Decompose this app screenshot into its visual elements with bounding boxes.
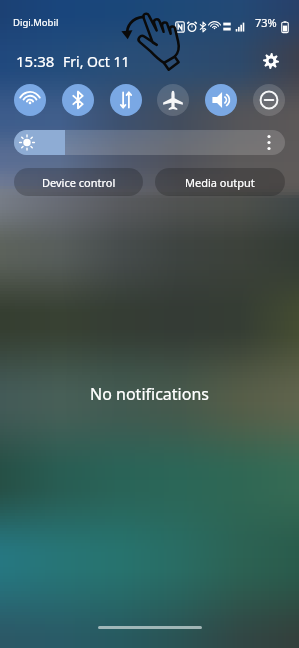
staticText: Digi.Mobil xyxy=(13,16,59,29)
staticText: 15:38 xyxy=(16,51,55,71)
button[interactable]: Media output xyxy=(155,168,285,196)
button[interactable]: Do not disturb xyxy=(253,84,285,116)
button[interactable]: Brightness xyxy=(14,130,285,155)
staticText: 73% xyxy=(255,15,277,30)
staticText: Fri, Oct 11 xyxy=(63,52,130,71)
staticText: No notifications xyxy=(90,383,209,405)
button[interactable]: Mobile data xyxy=(110,84,142,116)
button[interactable]: Device control xyxy=(14,168,143,196)
button[interactable]: Bluetooth xyxy=(62,84,94,116)
button[interactable]: Wi-Fi xyxy=(14,84,46,116)
staticText: Device control xyxy=(42,175,116,190)
button[interactable]: Airplane mode xyxy=(157,84,189,116)
button[interactable]: Settings xyxy=(259,49,283,73)
staticText: Media output xyxy=(185,175,255,190)
button[interactable]: Sound xyxy=(205,84,237,116)
